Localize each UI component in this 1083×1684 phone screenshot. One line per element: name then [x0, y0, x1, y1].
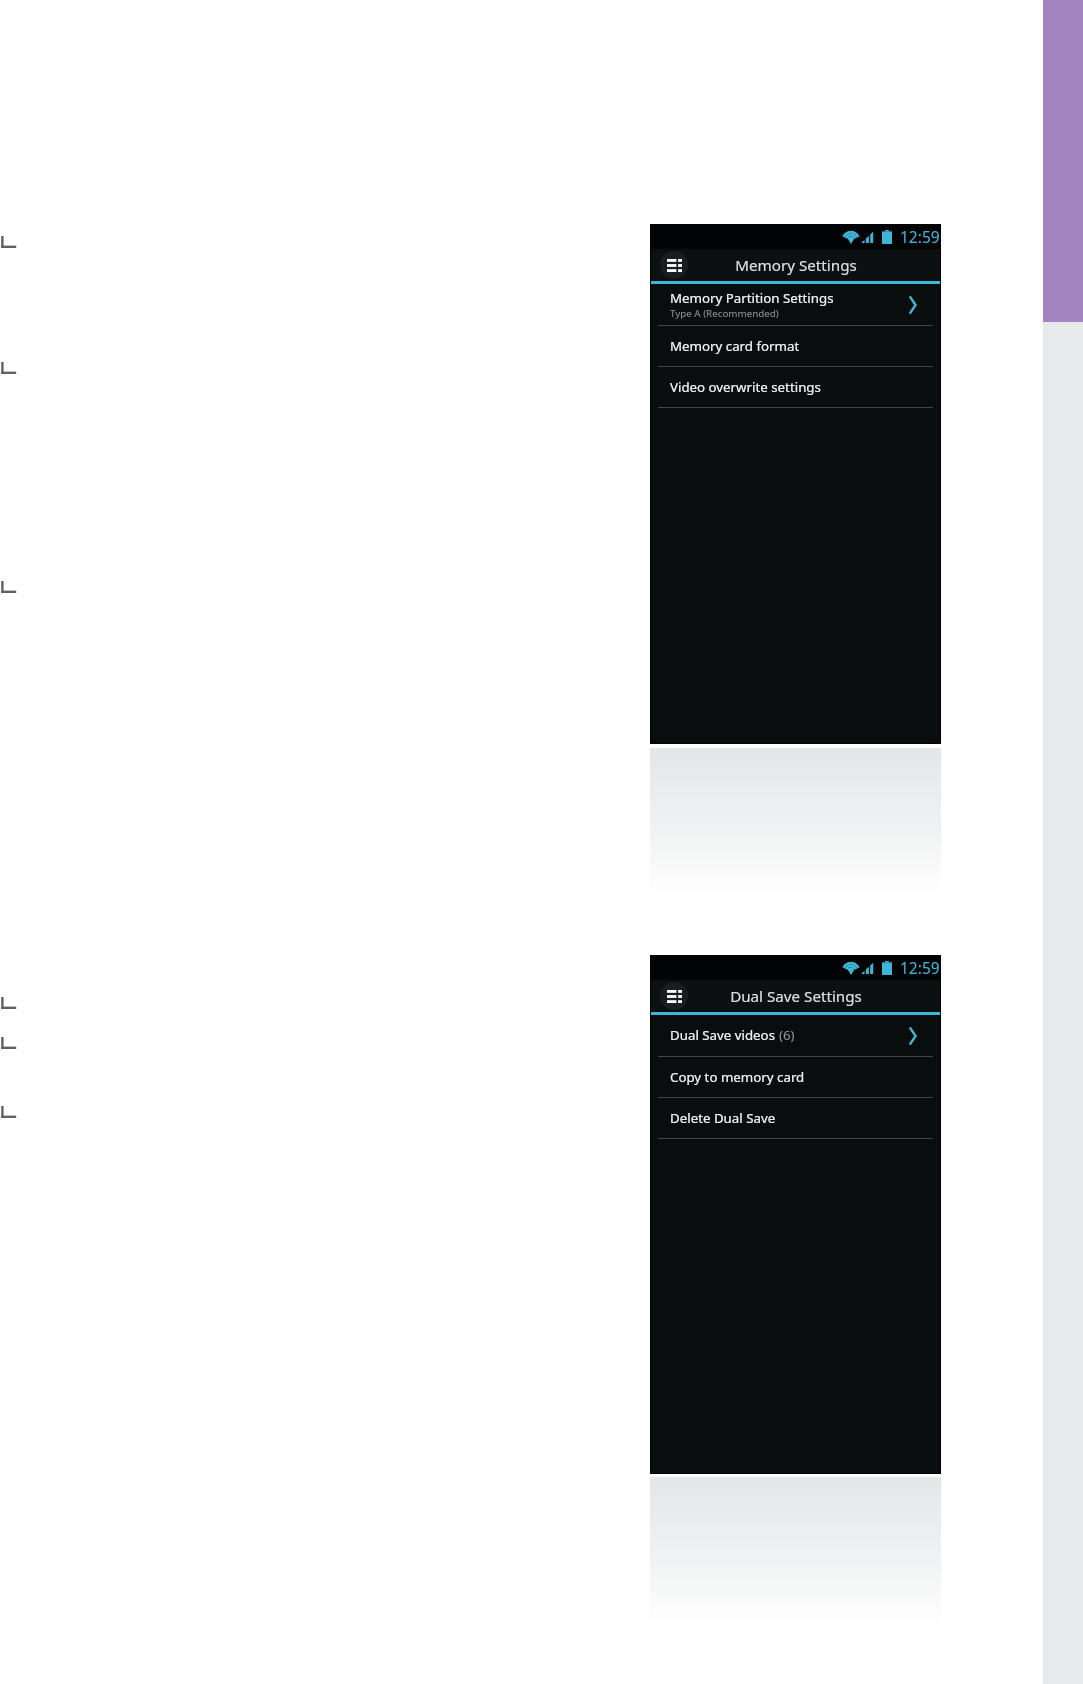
button[interactable]: Open menu: [660, 251, 688, 279]
staticText: Dual Save videos: [670, 1026, 779, 1044]
staticText: Memory Settings: [735, 255, 857, 276]
staticText: Copy to memory card: [670, 1068, 805, 1086]
button[interactable]: Copy to memory card: [651, 1057, 940, 1098]
staticText: Memory card format: [670, 337, 800, 355]
staticText: (6): [779, 1026, 795, 1044]
staticText: Memory Partition Settings: [670, 289, 834, 307]
button[interactable]: Dual Save videos: [651, 1015, 940, 1057]
button[interactable]: Video overwrite settings: [651, 367, 940, 408]
button[interactable]: Memory Partition Settings: [651, 284, 940, 326]
staticText: Delete Dual Save: [670, 1109, 776, 1127]
button[interactable]: Memory card format: [651, 326, 940, 367]
other: Open: [905, 1024, 921, 1048]
other: Open: [905, 293, 921, 317]
staticText: 12:59: [900, 226, 940, 247]
button[interactable]: Delete Dual Save: [651, 1098, 940, 1139]
staticText: Dual Save Settings: [730, 986, 862, 1007]
staticText: Video overwrite settings: [670, 378, 821, 396]
staticText: 12:59: [900, 957, 940, 978]
button[interactable]: Open menu: [660, 982, 688, 1010]
staticText: Type A (Recommended): [670, 307, 779, 320]
